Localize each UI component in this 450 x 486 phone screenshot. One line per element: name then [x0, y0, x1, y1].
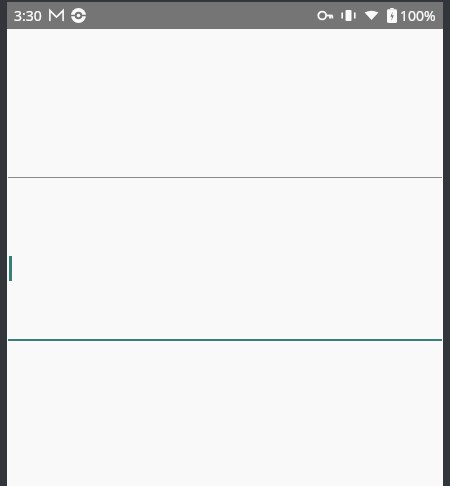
other: Vibrate mode [341, 8, 356, 23]
other: Sync [71, 8, 86, 23]
other: Wi-Fi [364, 8, 379, 23]
staticText: 100% [400, 6, 436, 25]
other: Gmail notification [49, 8, 64, 23]
other: Battery 100 percent [387, 8, 397, 23]
staticText: 3:30 [14, 6, 42, 25]
other: VPN key [318, 8, 333, 23]
